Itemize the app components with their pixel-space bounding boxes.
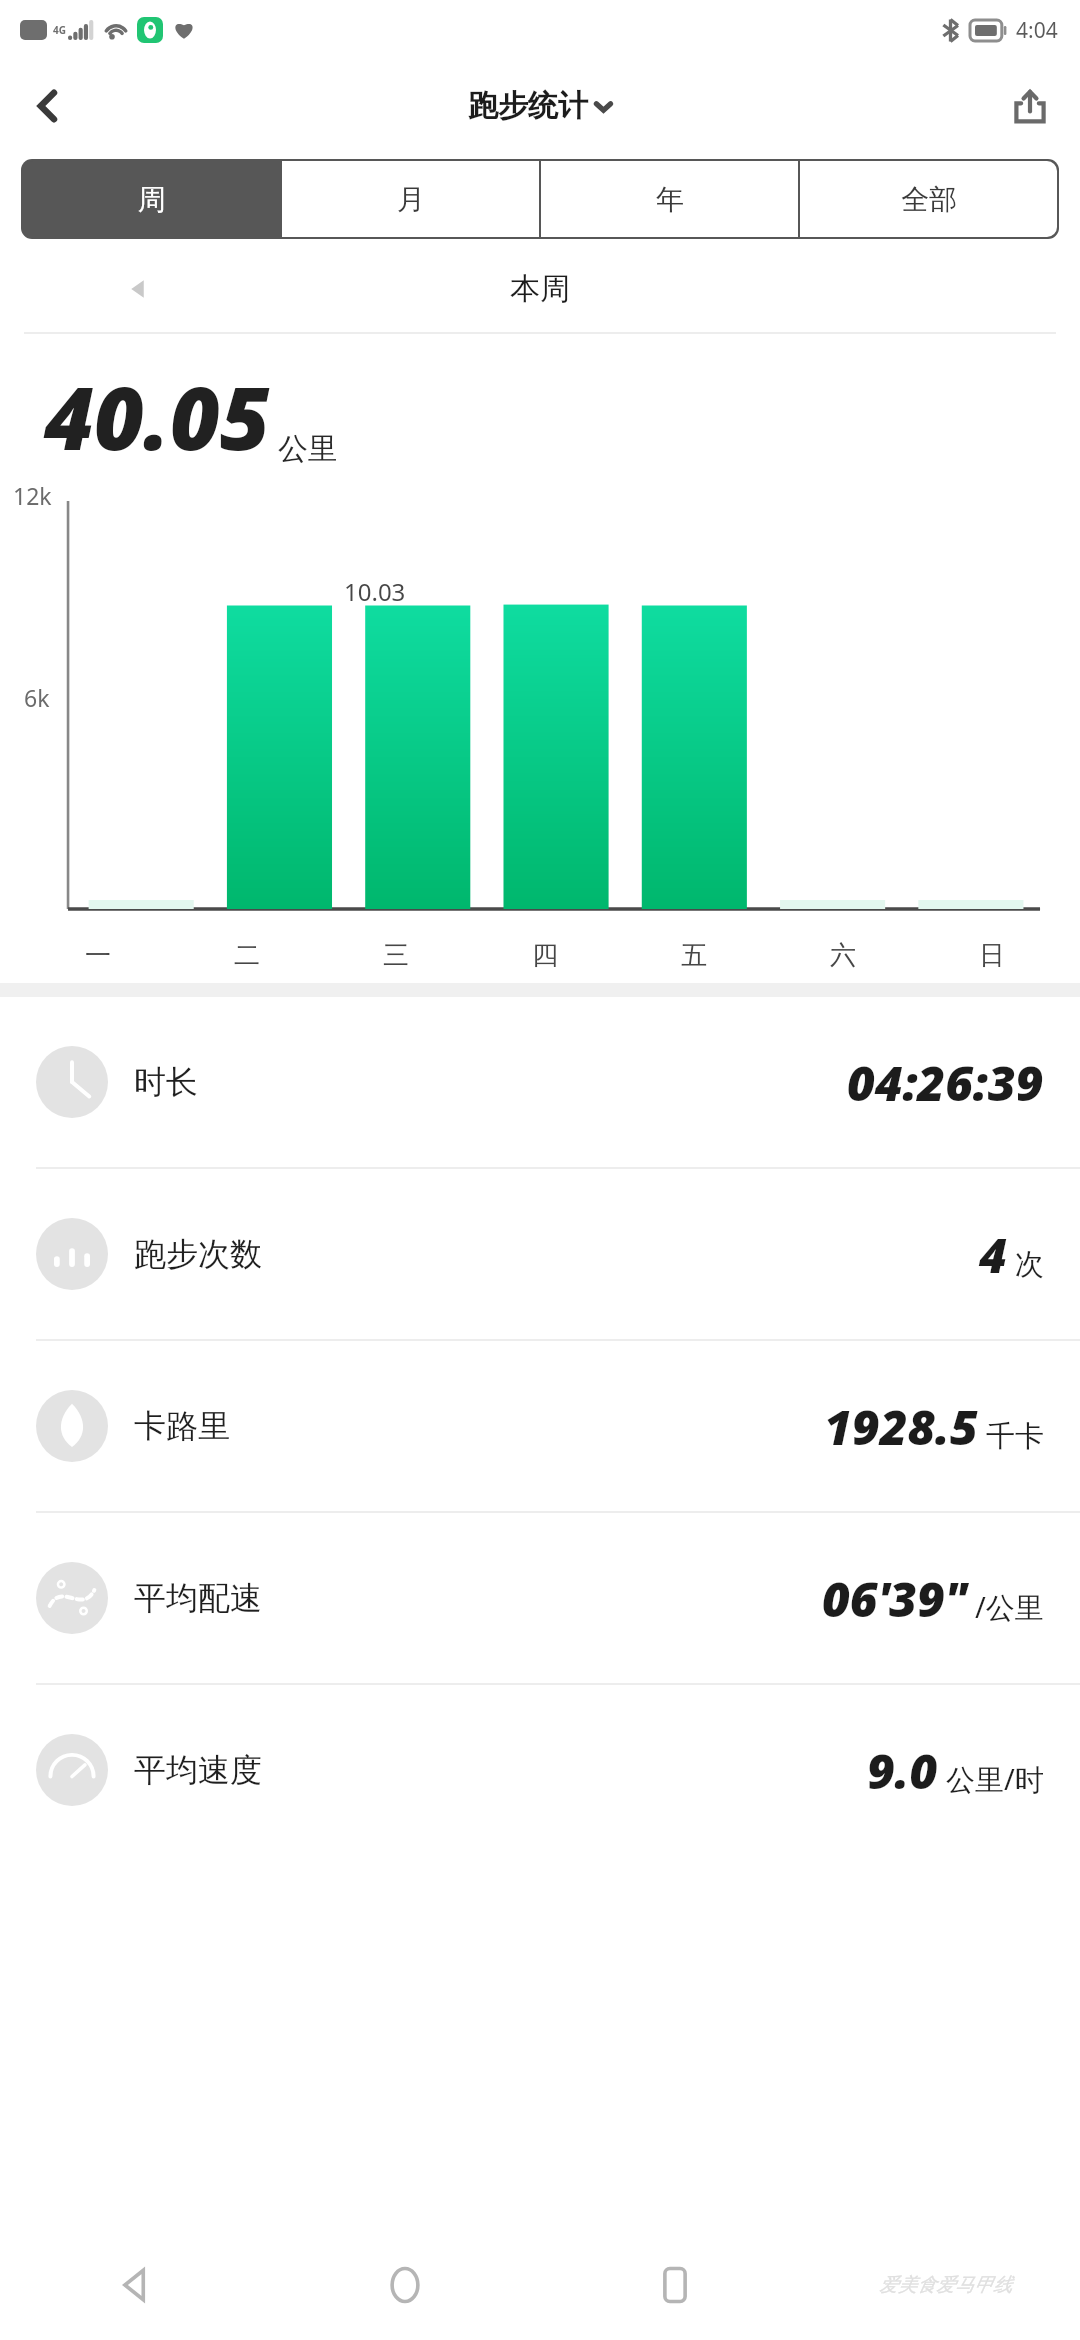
staticText: 06'39" <box>822 1566 967 1631</box>
staticText: 跑步次数 <box>134 1234 262 1274</box>
staticText: 全部 <box>901 182 957 217</box>
button[interactable]: Home <box>270 2230 540 2340</box>
staticText: 6k <box>24 682 50 713</box>
button[interactable]: 周 <box>23 161 280 237</box>
staticText: 4G <box>53 23 66 37</box>
staticText: 时长 <box>134 1062 198 1102</box>
button[interactable]: Previous week <box>112 263 164 315</box>
staticText: 月 <box>397 182 425 217</box>
staticText: 公里/时 <box>946 1759 1044 1799</box>
staticText: 千卡 <box>986 1418 1044 1455</box>
staticText: 周 <box>138 182 166 217</box>
button[interactable]: 卡路里 <box>0 1341 1080 1511</box>
staticText: 二 <box>234 939 260 972</box>
staticText: 平均速度 <box>134 1750 262 1790</box>
staticText: 卡路里 <box>134 1406 230 1446</box>
staticText: /公里 <box>975 1587 1044 1627</box>
button[interactable]: 跑步次数 <box>0 1169 1080 1339</box>
button[interactable]: 平均配速 <box>0 1513 1080 1683</box>
button[interactable]: 年 <box>541 161 798 237</box>
staticText: 跑步统计 <box>468 87 588 125</box>
staticText: 10.03 <box>344 575 406 608</box>
staticText: 三 <box>383 939 409 972</box>
button[interactable]: 全部 <box>800 161 1057 237</box>
button[interactable]: 时长 <box>0 997 1080 1167</box>
button[interactable]: Share <box>994 70 1066 142</box>
staticText: 公里 <box>278 430 338 468</box>
button[interactable]: Recents <box>540 2230 810 2340</box>
staticText: 六 <box>830 939 856 972</box>
button[interactable]: Back <box>0 2230 270 2340</box>
staticText: 本周 <box>510 270 570 308</box>
staticText: 年 <box>656 182 684 217</box>
staticText: 日 <box>979 939 1005 972</box>
staticText: 12k <box>13 480 52 511</box>
staticText: 4:04 <box>1016 16 1058 45</box>
staticText: 4 <box>979 1222 1007 1287</box>
button[interactable]: Back <box>12 70 84 142</box>
staticText: 40.05 <box>44 358 270 475</box>
staticText: 爱美食爱马甲线 <box>879 2273 1012 2297</box>
button[interactable]: 跑步统计 <box>468 87 612 125</box>
staticText: 一 <box>85 939 111 972</box>
staticText: 04:26:39 <box>847 1050 1044 1115</box>
button[interactable]: 月 <box>282 161 539 237</box>
button[interactable]: 平均速度 <box>0 1685 1080 1855</box>
staticText: 五 <box>681 939 707 972</box>
staticText: 次 <box>1015 1246 1044 1283</box>
staticText: 1928.5 <box>824 1394 978 1459</box>
staticText: 9.0 <box>867 1738 938 1803</box>
staticText: 平均配速 <box>134 1578 262 1618</box>
staticText: 四 <box>532 939 558 972</box>
